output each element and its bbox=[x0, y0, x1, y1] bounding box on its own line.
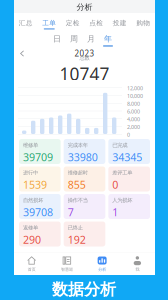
staticText: 分析 bbox=[98, 267, 106, 272]
staticText: 完成本年 bbox=[68, 142, 88, 148]
staticText: 维修单 bbox=[23, 142, 38, 148]
button[interactable]: 月 bbox=[82, 30, 99, 49]
staticText: 定检 bbox=[66, 19, 80, 27]
staticText: 2,000 bbox=[127, 123, 140, 130]
staticText: 人为损坏 bbox=[112, 197, 132, 203]
button[interactable]: 工单 bbox=[37, 13, 61, 30]
staticText: 智慧巡 bbox=[61, 267, 73, 272]
button[interactable]: 周 bbox=[65, 30, 82, 49]
staticText: 7 bbox=[68, 205, 74, 219]
staticText: 月 bbox=[87, 34, 95, 44]
staticText: 我 bbox=[135, 267, 139, 272]
staticText: 4,000 bbox=[127, 115, 140, 123]
staticText: 日 bbox=[53, 34, 61, 44]
staticText: 返修单 bbox=[23, 224, 38, 231]
button[interactable]: 定检 bbox=[61, 13, 84, 30]
staticText: 分析 bbox=[76, 2, 92, 12]
button[interactable]: 点检 bbox=[84, 13, 108, 30]
button[interactable]: 投建 bbox=[108, 13, 131, 30]
staticText: 进行中 bbox=[23, 169, 38, 176]
button[interactable]: 自然损坏 bbox=[19, 194, 61, 219]
button[interactable]: 首页 bbox=[14, 252, 49, 275]
button[interactable]: 已完成 bbox=[108, 139, 150, 164]
staticText: 周 bbox=[70, 34, 78, 44]
staticText: 点检 bbox=[89, 19, 103, 27]
button[interactable]: 完成本年 bbox=[64, 139, 105, 164]
button[interactable]: 人为损坏 bbox=[108, 194, 150, 219]
staticText: 0 bbox=[127, 131, 130, 138]
staticText: 10747 bbox=[59, 62, 109, 85]
button[interactable]: 上一年 bbox=[14, 49, 30, 58]
staticText: 290 bbox=[23, 232, 41, 247]
button[interactable]: 操作不当 bbox=[64, 194, 105, 219]
staticText: 10,000 bbox=[127, 92, 143, 99]
staticText: 6,000 bbox=[127, 108, 140, 115]
button[interactable]: 汇总 bbox=[14, 13, 37, 30]
staticText: 2023 bbox=[74, 48, 94, 59]
button[interactable]: 维修单 bbox=[19, 139, 61, 164]
staticText: 39709 bbox=[23, 150, 53, 164]
staticText: 已完成 bbox=[112, 142, 127, 148]
staticText: 年 bbox=[104, 34, 112, 44]
staticText: 已终止 bbox=[68, 224, 83, 231]
staticText: 855 bbox=[68, 177, 86, 192]
staticText: 0 bbox=[112, 177, 118, 192]
button[interactable]: 进行中 bbox=[19, 166, 61, 191]
button[interactable]: 我 bbox=[120, 252, 155, 275]
staticText: 33980 bbox=[68, 150, 98, 164]
button[interactable]: 返修单 bbox=[19, 221, 61, 246]
staticText: 维修超时 bbox=[68, 169, 88, 176]
staticText: 1539 bbox=[23, 177, 47, 192]
button[interactable]: 已终止 bbox=[64, 221, 105, 246]
button[interactable]: 差评工单 bbox=[108, 166, 150, 191]
staticText: 8,000 bbox=[127, 100, 140, 107]
staticText: 12,000 bbox=[127, 84, 143, 92]
staticText: 差评工单 bbox=[112, 169, 132, 176]
button[interactable]: 维修超时 bbox=[64, 166, 105, 191]
staticText: 自然损坏 bbox=[23, 197, 43, 203]
staticText: 汇总 bbox=[19, 19, 33, 27]
staticText: 1 bbox=[112, 205, 118, 219]
button[interactable]: 购物 bbox=[131, 13, 155, 30]
button[interactable]: 年 bbox=[99, 30, 116, 49]
button[interactable]: 智慧巡 bbox=[49, 252, 84, 275]
staticText: 操作不当 bbox=[68, 197, 88, 203]
staticText: 投建 bbox=[113, 19, 127, 27]
staticText: 39708 bbox=[23, 205, 53, 219]
staticText: 购物 bbox=[136, 19, 150, 27]
staticText: 总数 bbox=[79, 55, 89, 61]
button[interactable]: 日 bbox=[48, 30, 65, 49]
staticText: 192 bbox=[68, 232, 86, 247]
staticText: 数据分析 bbox=[52, 280, 116, 299]
staticText: 工单 bbox=[42, 19, 56, 27]
staticText: 首页 bbox=[28, 267, 36, 272]
button[interactable]: 分析 bbox=[84, 252, 120, 275]
staticText: 34345 bbox=[112, 150, 142, 164]
